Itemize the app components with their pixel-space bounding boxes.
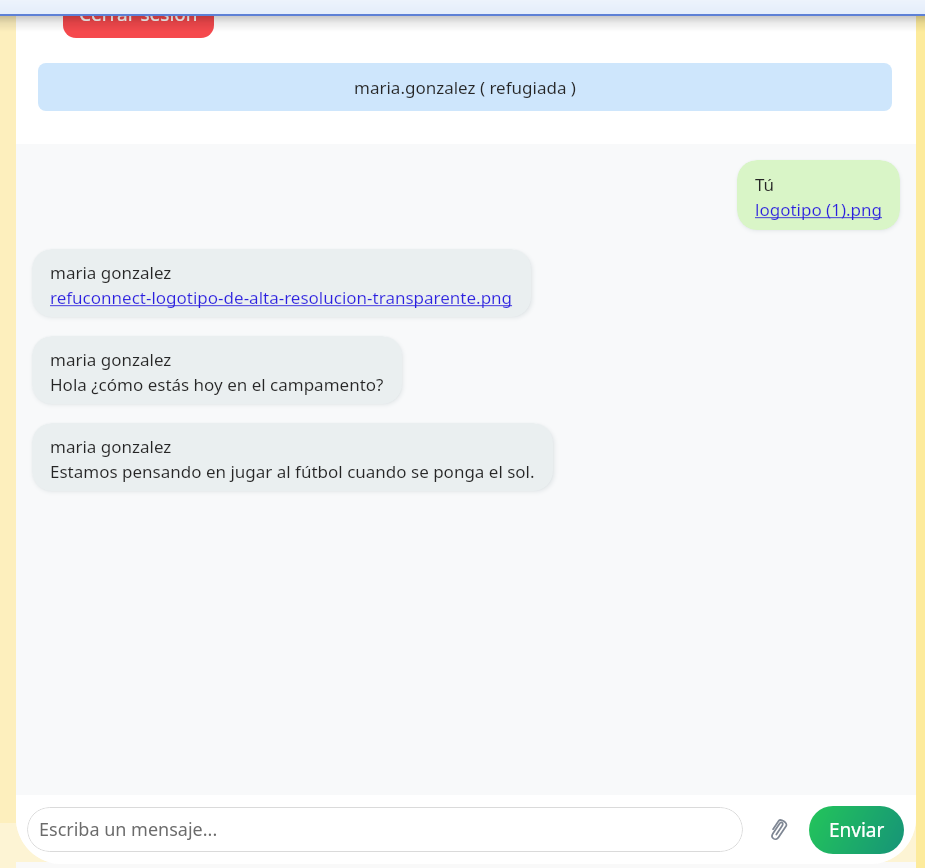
button[interactable]: maria gonzalez <box>32 423 553 491</box>
button[interactable]: maria gonzalez <box>32 336 402 404</box>
button[interactable]: Cerrar sesión <box>63 0 214 38</box>
button[interactable]: Enviar <box>809 806 904 854</box>
button[interactable]: Tú <box>737 160 900 230</box>
button[interactable]: Escriba un mensaje... <box>27 807 743 852</box>
staticText: maria.gonzalez ( refugiada ) <box>354 76 576 99</box>
staticText: Escriba un mensaje... <box>39 817 218 842</box>
button[interactable]: Adjuntar archivo <box>759 811 797 849</box>
staticText: Tú <box>755 173 775 196</box>
button[interactable]: maria.gonzalez ( refugiada ) <box>38 63 892 111</box>
staticText: Enviar <box>829 817 885 843</box>
button[interactable]: maria gonzalez <box>32 249 531 317</box>
staticText: maria gonzalez <box>50 348 172 371</box>
staticText: refuconnect-logotipo-de-alta-resolucion-… <box>50 286 513 309</box>
staticText: logotipo (1).png <box>755 198 882 221</box>
staticText: Cerrar sesión <box>79 1 198 27</box>
staticText: Hola ¿cómo estás hoy en el campamento? <box>50 373 384 396</box>
staticText: maria gonzalez <box>50 435 172 458</box>
staticText: maria gonzalez <box>50 261 172 284</box>
staticText: Estamos pensando en jugar al fútbol cuan… <box>50 460 535 483</box>
